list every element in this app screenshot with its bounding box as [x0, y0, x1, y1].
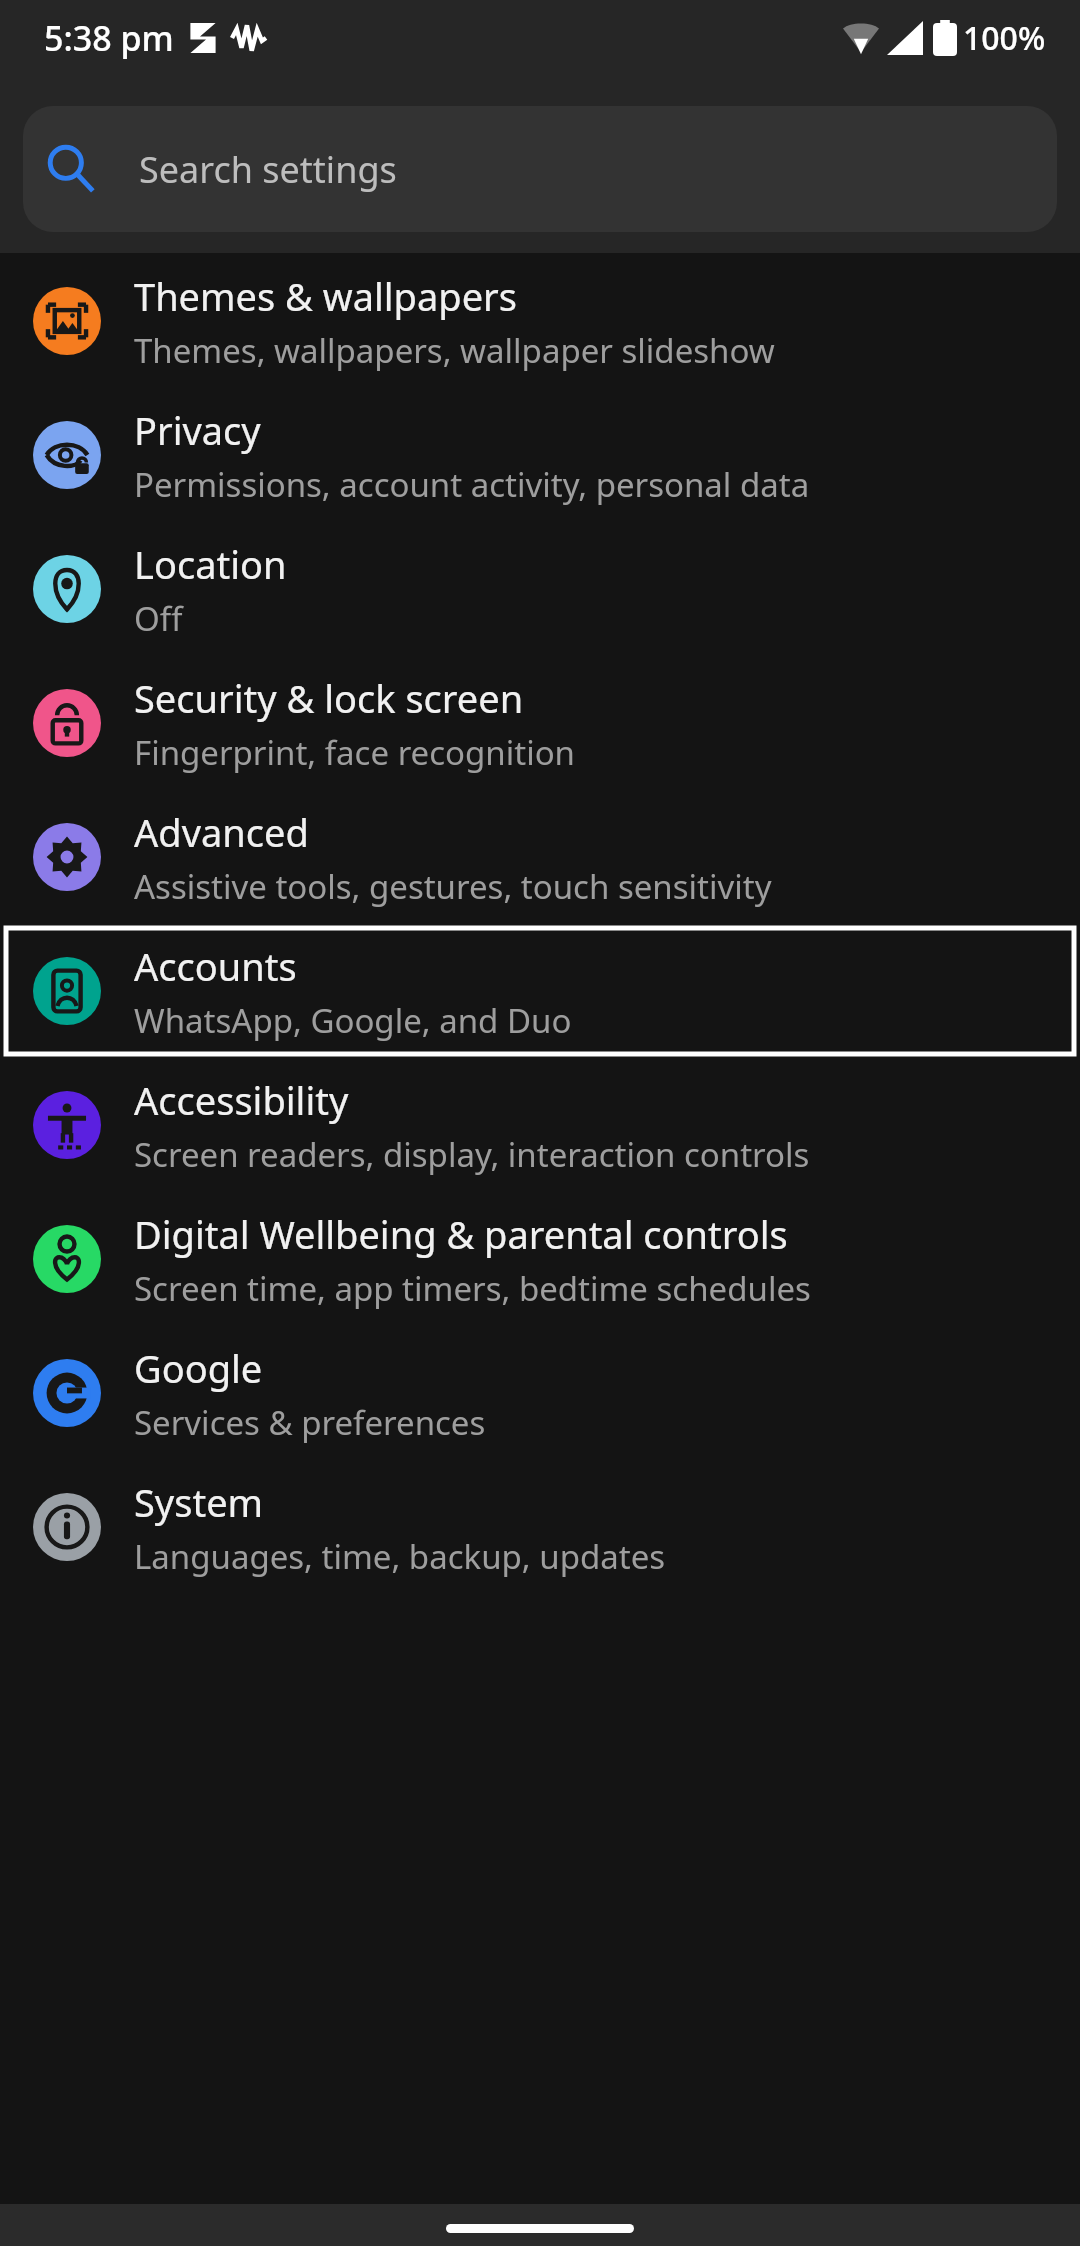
staticText: Services & preferences: [134, 1400, 486, 1445]
staticText: Assistive tools, gestures, touch sensiti…: [134, 864, 772, 909]
staticText: WhatsApp, Google, and Duo: [134, 998, 572, 1043]
staticText: 5:38 pm: [44, 15, 174, 61]
button[interactable]: Themes & wallpapers: [0, 254, 1080, 388]
staticText: Permissions, account activity, personal …: [134, 462, 810, 507]
button[interactable]: Advanced: [0, 790, 1080, 924]
button[interactable]: Accessibility: [0, 1058, 1080, 1192]
staticText: Advanced: [134, 806, 309, 858]
button[interactable]: Digital Wellbeing & parental controls: [0, 1192, 1080, 1326]
staticText: Accessibility: [134, 1074, 349, 1126]
button[interactable]: Accounts: [0, 924, 1080, 1058]
button[interactable]: Security & lock screen: [0, 656, 1080, 790]
staticText: Languages, time, backup, updates: [134, 1534, 666, 1579]
staticText: Screen time, app timers, bedtime schedul…: [134, 1266, 811, 1311]
staticText: Display: [134, 136, 264, 188]
button[interactable]: Google: [0, 1326, 1080, 1460]
staticText: Location: [134, 538, 287, 590]
staticText: Themes, wallpapers, wallpaper slideshow: [134, 328, 775, 373]
staticText: 100%: [963, 16, 1046, 60]
button[interactable]: Display: [0, 120, 1080, 254]
button[interactable]: Location: [0, 522, 1080, 656]
staticText: Security & lock screen: [134, 672, 524, 724]
staticText: Themes & wallpapers: [134, 270, 517, 322]
staticText: Off: [134, 596, 183, 641]
staticText: Search settings: [139, 145, 397, 194]
staticText: Screen readers, display, interaction con…: [134, 1132, 810, 1177]
staticText: Fingerprint, face recognition: [134, 730, 576, 775]
button[interactable]: Search settings: [23, 106, 1057, 232]
staticText: Google: [134, 1342, 263, 1394]
staticText: Accounts: [134, 940, 297, 992]
button[interactable]: Privacy: [0, 388, 1080, 522]
staticText: Privacy: [134, 404, 261, 456]
button[interactable]: System: [0, 1460, 1080, 1594]
staticText: System: [134, 1476, 264, 1528]
staticText: Brightness level, Splendid, system navig…: [134, 194, 832, 239]
staticText: Digital Wellbeing & parental controls: [134, 1208, 788, 1260]
